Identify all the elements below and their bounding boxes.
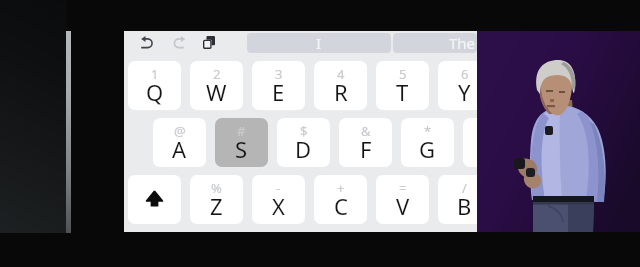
staticText: T [396, 77, 409, 107]
staticText: F [360, 134, 372, 164]
staticText: I [316, 33, 322, 53]
staticText: S [235, 134, 248, 164]
button[interactable]: + [314, 175, 367, 224]
staticText: $ [300, 122, 308, 140]
staticText: @ [174, 122, 186, 140]
staticText: / [462, 179, 467, 197]
button[interactable]: Shift [128, 175, 181, 224]
staticText: 2 [213, 65, 221, 83]
button[interactable]: % [190, 175, 243, 224]
button[interactable]: 2 [190, 61, 243, 110]
button[interactable]: 1 [128, 61, 181, 110]
staticText: & [361, 122, 371, 140]
button[interactable]: The [393, 33, 477, 53]
staticText: # [237, 122, 246, 140]
button[interactable]: / [438, 175, 477, 224]
staticText: C [334, 191, 348, 221]
staticText: X [272, 191, 285, 221]
staticText: + [337, 179, 345, 197]
button[interactable]: Redo [165, 32, 190, 54]
staticText: Y [458, 77, 471, 107]
staticText: 6 [461, 65, 469, 83]
staticText: 5 [399, 65, 407, 83]
staticText: B [457, 191, 472, 221]
button[interactable]: 4 [314, 61, 367, 110]
button[interactable]: Copy [198, 32, 220, 54]
button[interactable]: * [401, 118, 454, 167]
other: Shift [128, 175, 181, 224]
staticText: % [211, 179, 222, 197]
staticText: 1 [151, 65, 159, 83]
button[interactable]: Undo [135, 32, 160, 54]
button[interactable]: & [339, 118, 392, 167]
staticText: Z [210, 191, 223, 221]
button[interactable]: $ [277, 118, 330, 167]
staticText: D [295, 134, 312, 164]
button[interactable]: ( [463, 118, 477, 167]
button[interactable]: - [252, 175, 305, 224]
staticText: R [334, 77, 348, 107]
staticText: * [424, 122, 432, 140]
button[interactable]: 3 [252, 61, 305, 110]
staticText: E [272, 77, 285, 107]
staticText: A [172, 134, 187, 164]
button[interactable]: 6 [438, 61, 477, 110]
staticText: - [276, 179, 281, 197]
button[interactable]: 5 [376, 61, 429, 110]
staticText: G [419, 134, 436, 164]
staticText: 4 [337, 65, 345, 83]
staticText: W [206, 77, 227, 107]
staticText: 3 [275, 65, 283, 83]
staticText: The [449, 33, 476, 53]
button[interactable]: = [376, 175, 429, 224]
staticText: Q [146, 77, 164, 107]
staticText: = [399, 179, 407, 197]
button[interactable]: @ [153, 118, 206, 167]
button[interactable]: # [215, 118, 268, 167]
staticText: V [396, 191, 410, 221]
